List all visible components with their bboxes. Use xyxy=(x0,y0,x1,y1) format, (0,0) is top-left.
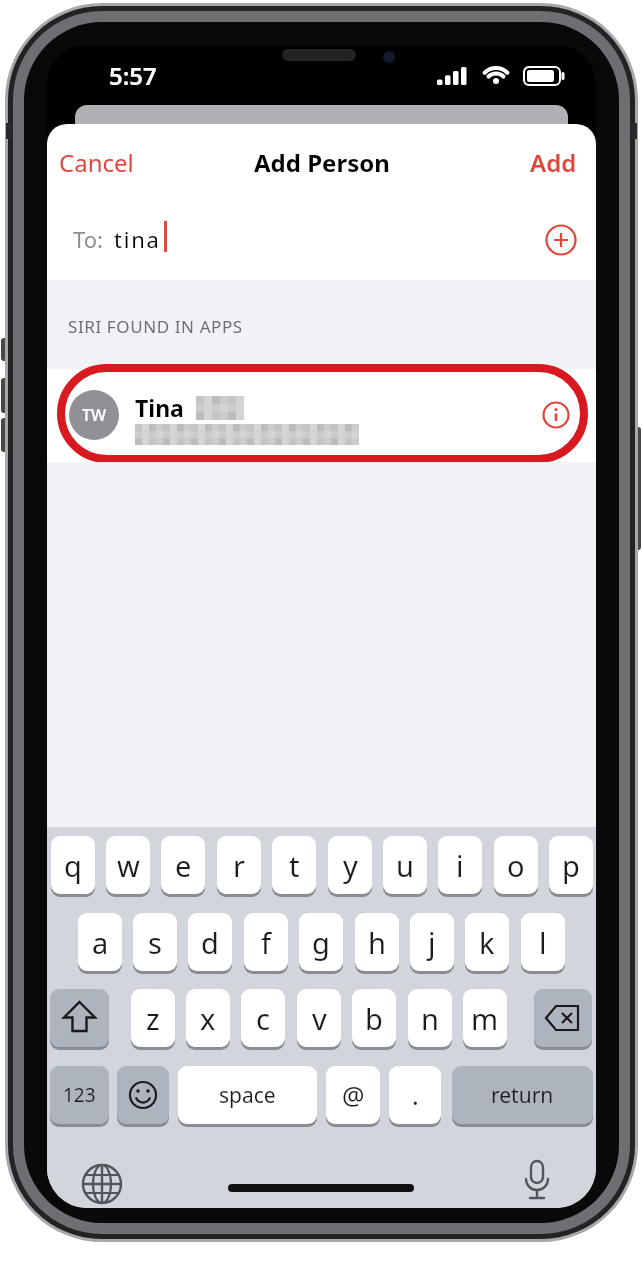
button[interactable]: p xyxy=(549,836,593,894)
staticText: o xyxy=(507,846,525,885)
button[interactable]: d xyxy=(188,913,232,971)
button[interactable]: l xyxy=(521,913,565,971)
button[interactable]: v xyxy=(297,989,341,1047)
staticText: x xyxy=(200,999,216,1038)
staticText: t xyxy=(289,846,300,885)
staticText: l xyxy=(539,923,547,962)
button[interactable]: t xyxy=(272,836,316,894)
staticText: m xyxy=(471,999,499,1038)
staticText: b xyxy=(365,999,383,1038)
button[interactable]: Cancel xyxy=(59,146,134,179)
button[interactable]: i xyxy=(438,836,482,894)
staticText: r xyxy=(233,846,245,885)
staticText: i xyxy=(456,846,464,885)
staticText: SIRI FOUND IN APPS xyxy=(68,315,243,338)
button[interactable]: b xyxy=(352,989,396,1047)
button[interactable]: z xyxy=(131,989,175,1047)
staticText: Add Person xyxy=(254,146,390,179)
button[interactable]: j xyxy=(410,913,454,971)
staticText: v xyxy=(312,999,327,1038)
staticText: d xyxy=(201,923,219,962)
staticText: h xyxy=(368,923,386,962)
staticText: k xyxy=(479,923,495,962)
button[interactable]: TW xyxy=(47,369,596,462)
button[interactable] xyxy=(80,1162,124,1206)
staticText: e xyxy=(175,846,192,885)
button[interactable]: r xyxy=(217,836,261,894)
button[interactable]: x xyxy=(186,989,230,1047)
button[interactable]: Add xyxy=(530,146,577,179)
button[interactable] xyxy=(542,401,570,429)
button[interactable]: q xyxy=(51,836,95,894)
button[interactable]: c xyxy=(241,989,285,1047)
button[interactable]: . xyxy=(389,1066,441,1124)
staticText: tina xyxy=(114,224,161,254)
staticText: u xyxy=(396,846,414,885)
staticText: Add xyxy=(530,146,577,179)
staticText: s xyxy=(148,923,162,962)
button[interactable]: a xyxy=(78,913,122,971)
staticText: z xyxy=(146,999,160,1038)
staticText: a xyxy=(92,923,109,962)
button[interactable]: g xyxy=(299,913,343,971)
staticText: To: xyxy=(73,224,103,254)
button[interactable] xyxy=(534,989,592,1047)
button[interactable]: w xyxy=(106,836,150,894)
staticText: Tina xyxy=(135,392,184,423)
staticText: q xyxy=(64,846,82,885)
button[interactable] xyxy=(117,1066,169,1124)
button[interactable]: y xyxy=(328,836,372,894)
button[interactable]: s xyxy=(133,913,177,971)
button[interactable]: h xyxy=(355,913,399,971)
staticText: . xyxy=(412,1078,419,1112)
staticText: @ xyxy=(342,1078,365,1112)
button[interactable]: n xyxy=(408,989,452,1047)
button[interactable]: f xyxy=(244,913,288,971)
button[interactable]: e xyxy=(161,836,205,894)
button[interactable]: space xyxy=(178,1066,317,1124)
button[interactable]: m xyxy=(463,989,507,1047)
button[interactable]: o xyxy=(494,836,538,894)
button[interactable]: u xyxy=(383,836,427,894)
staticText: c xyxy=(256,999,270,1038)
staticText: Cancel xyxy=(59,146,134,179)
staticText: space xyxy=(219,1081,276,1110)
button[interactable]: 123 xyxy=(50,1066,109,1124)
staticText: y xyxy=(343,846,358,885)
staticText: n xyxy=(421,999,439,1038)
button[interactable] xyxy=(545,224,577,256)
staticText: w xyxy=(117,846,140,885)
staticText: TW xyxy=(82,404,107,426)
staticText: g xyxy=(312,923,330,962)
button[interactable] xyxy=(50,989,109,1047)
staticText: f xyxy=(261,923,271,962)
button[interactable]: @ xyxy=(326,1066,380,1124)
button[interactable] xyxy=(519,1159,555,1205)
button[interactable]: k xyxy=(465,913,509,971)
staticText: 123 xyxy=(63,1082,96,1108)
staticText: return xyxy=(491,1081,554,1110)
staticText: p xyxy=(562,846,580,885)
staticText: j xyxy=(428,923,436,962)
staticText: 5:57 xyxy=(109,59,157,92)
button[interactable]: return xyxy=(452,1066,593,1124)
